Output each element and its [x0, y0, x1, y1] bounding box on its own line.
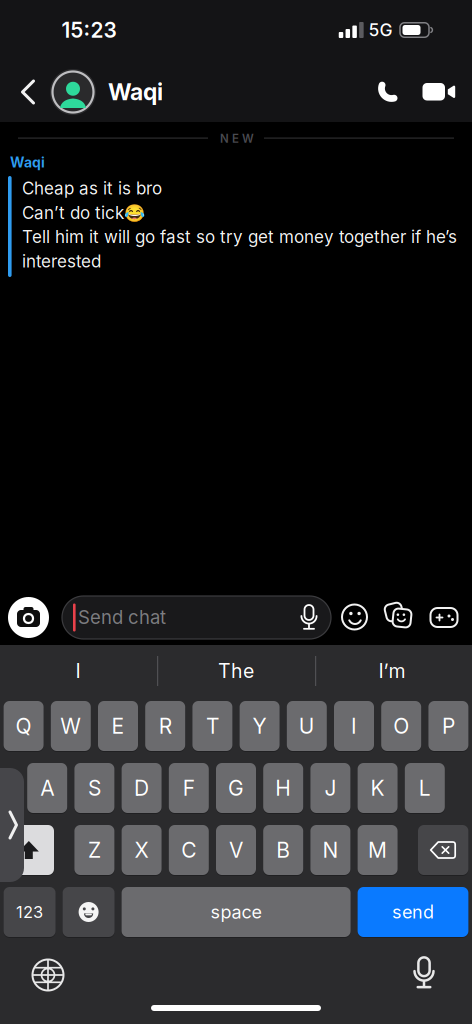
staticText: H	[275, 775, 291, 801]
button[interactable]	[50, 69, 96, 115]
button[interactable]	[32, 959, 63, 990]
staticText: 123	[16, 902, 43, 922]
button[interactable]: S	[74, 763, 114, 814]
button[interactable]: I	[334, 701, 374, 752]
button[interactable]	[8, 597, 49, 638]
button[interactable]: G	[216, 763, 256, 814]
button[interactable]	[4, 825, 54, 876]
button[interactable]: L	[405, 763, 445, 814]
staticText: L	[419, 775, 431, 801]
button[interactable]: The	[176, 651, 296, 691]
button[interactable]: I’m	[342, 651, 442, 691]
staticText: space	[211, 901, 262, 923]
staticText: A	[40, 775, 54, 801]
staticText: W	[60, 713, 81, 739]
staticText: send	[392, 901, 434, 923]
button[interactable]: F	[169, 763, 209, 814]
staticText: Tell him it will go fast so try get mone…	[22, 226, 457, 247]
button[interactable]: K	[358, 763, 398, 814]
staticText: M	[368, 837, 387, 863]
staticText: Cheap as it is bro	[22, 178, 162, 199]
button[interactable]: H	[263, 763, 303, 814]
staticText: U	[299, 713, 315, 739]
button[interactable]: Q	[4, 701, 44, 752]
button[interactable]	[418, 825, 468, 876]
button[interactable]: C	[169, 825, 209, 876]
staticText: I	[75, 659, 80, 683]
staticText: The	[218, 659, 254, 683]
staticText: interested	[22, 251, 101, 272]
button[interactable]: T	[192, 701, 232, 752]
staticText: B	[276, 837, 290, 863]
button[interactable]	[63, 887, 115, 938]
staticText: Q	[16, 713, 32, 739]
staticText: T	[206, 713, 219, 739]
staticText: K	[371, 775, 385, 801]
staticText: V	[229, 837, 243, 863]
button[interactable]: Send chat	[62, 596, 331, 639]
button[interactable]	[385, 602, 413, 630]
button[interactable]: 123	[4, 887, 56, 938]
staticText: J	[324, 775, 336, 801]
button[interactable]	[430, 603, 458, 631]
button[interactable]: W	[51, 701, 91, 752]
button[interactable]: R	[145, 701, 185, 752]
button[interactable]	[0, 768, 24, 882]
button[interactable]: B	[263, 825, 303, 876]
button[interactable]: P	[428, 701, 468, 752]
button[interactable]: V	[216, 825, 256, 876]
button[interactable]: U	[287, 701, 327, 752]
button[interactable]: J	[310, 763, 350, 814]
staticText: F	[183, 775, 195, 801]
staticText: Send chat	[78, 606, 166, 628]
button[interactable]	[13, 74, 43, 110]
staticText: G	[228, 775, 244, 801]
button[interactable]: send	[358, 887, 468, 938]
button[interactable]: E	[98, 701, 138, 752]
staticText: D	[134, 775, 149, 801]
button[interactable]: O	[381, 701, 421, 752]
staticText: R	[159, 713, 172, 739]
button[interactable]: Z	[74, 825, 114, 876]
button[interactable]: I	[28, 651, 128, 691]
staticText: 15:23	[61, 17, 116, 43]
staticText: C	[181, 837, 196, 863]
button[interactable]: D	[122, 763, 162, 814]
staticText: E	[111, 713, 124, 739]
button[interactable]	[342, 604, 368, 630]
button[interactable]: A	[27, 763, 67, 814]
button[interactable]: N	[310, 825, 350, 876]
button[interactable]	[413, 959, 435, 986]
staticText: I’m	[378, 659, 405, 683]
staticText: Y	[253, 713, 267, 739]
staticText: Can’t do tick😂	[22, 202, 145, 223]
staticText: S	[88, 775, 101, 801]
staticText: Waqi	[10, 154, 45, 171]
button[interactable]	[417, 74, 461, 110]
staticText: O	[393, 713, 409, 739]
staticText: X	[135, 837, 149, 863]
button[interactable]: Y	[240, 701, 280, 752]
staticText: N	[322, 837, 338, 863]
staticText: Waqi	[108, 78, 163, 106]
button[interactable]: X	[122, 825, 162, 876]
button[interactable]: space	[122, 887, 351, 938]
staticText: P	[442, 713, 455, 739]
button[interactable]	[369, 74, 409, 110]
staticText: Z	[88, 837, 101, 863]
staticText: N E W	[220, 131, 254, 145]
button[interactable]: M	[358, 825, 398, 876]
staticText: 5G	[368, 19, 392, 41]
staticText: I	[351, 713, 357, 739]
